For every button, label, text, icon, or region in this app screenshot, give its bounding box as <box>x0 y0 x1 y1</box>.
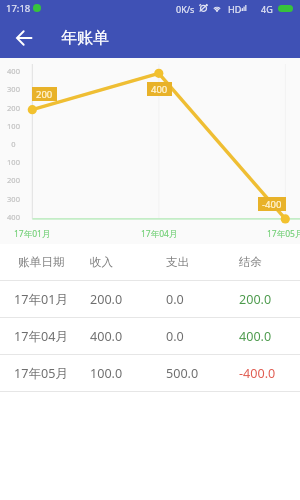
staticText: 100.0 <box>90 365 123 382</box>
staticText: 0.0 <box>166 291 184 308</box>
staticText: 17年05月 <box>267 228 300 240</box>
staticText: 400.0 <box>239 328 272 345</box>
staticText: 收入 <box>90 255 114 270</box>
button[interactable]: 账单日期 <box>0 244 300 280</box>
staticText: 200 <box>36 88 53 101</box>
staticText: 17:18 <box>6 2 31 15</box>
staticText: 4G <box>261 3 273 15</box>
staticText: 300 <box>2 84 25 94</box>
button[interactable]: 17年05月 <box>0 355 300 391</box>
staticText: 支出 <box>166 255 190 270</box>
staticText: 0K/s <box>176 3 195 15</box>
button[interactable]: Back <box>9 23 39 53</box>
staticText: 结余 <box>239 255 263 270</box>
staticText: 0 <box>2 139 25 149</box>
staticText: 400 <box>151 83 168 96</box>
staticText: 400 <box>2 66 25 76</box>
staticText: 200 <box>2 175 25 185</box>
staticText: -400 <box>262 198 282 211</box>
staticText: HD <box>228 3 242 15</box>
staticText: 17年05月 <box>14 365 69 382</box>
staticText: 年账单 <box>61 28 109 48</box>
staticText: 200.0 <box>239 291 272 308</box>
staticText: 17年04月 <box>14 328 69 345</box>
staticText: 0.0 <box>166 328 184 345</box>
staticText: 200.0 <box>90 291 123 308</box>
staticText: 500.0 <box>166 365 199 382</box>
staticText: 账单日期 <box>18 255 65 270</box>
staticText: 400 <box>2 212 25 222</box>
staticText: 17年01月 <box>14 228 51 240</box>
staticText: -400.0 <box>239 365 276 382</box>
button[interactable]: 17年01月 <box>0 281 300 317</box>
staticText: 300 <box>2 194 25 204</box>
staticText: 17年01月 <box>14 291 69 308</box>
staticText: 100 <box>2 121 25 131</box>
staticText: 200 <box>2 103 25 113</box>
button[interactable]: 17年04月 <box>0 318 300 354</box>
staticText: 400.0 <box>90 328 123 345</box>
staticText: 17年04月 <box>141 228 178 240</box>
staticText: 100 <box>2 157 25 167</box>
